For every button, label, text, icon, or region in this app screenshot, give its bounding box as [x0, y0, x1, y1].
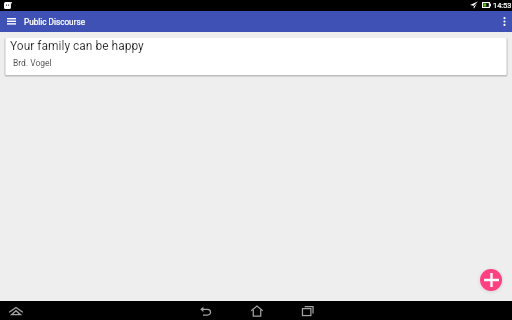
- button[interactable]: Your family can be happy: [6, 38, 506, 75]
- staticText: Your family can be happy: [10, 39, 144, 53]
- button[interactable]: Add: [480, 269, 502, 291]
- staticText: 14:53: [493, 1, 512, 10]
- button[interactable]: Back: [197, 302, 215, 320]
- button[interactable]: Navigation menu: [1, 11, 22, 32]
- staticText: Brd. Vogel: [13, 58, 52, 68]
- button[interactable]: Home: [248, 302, 266, 320]
- staticText: Public Discourse: [24, 17, 85, 27]
- button[interactable]: Hide keyboard: [7, 302, 25, 320]
- button[interactable]: More options: [494, 11, 512, 32]
- button[interactable]: Recent apps: [299, 302, 317, 320]
